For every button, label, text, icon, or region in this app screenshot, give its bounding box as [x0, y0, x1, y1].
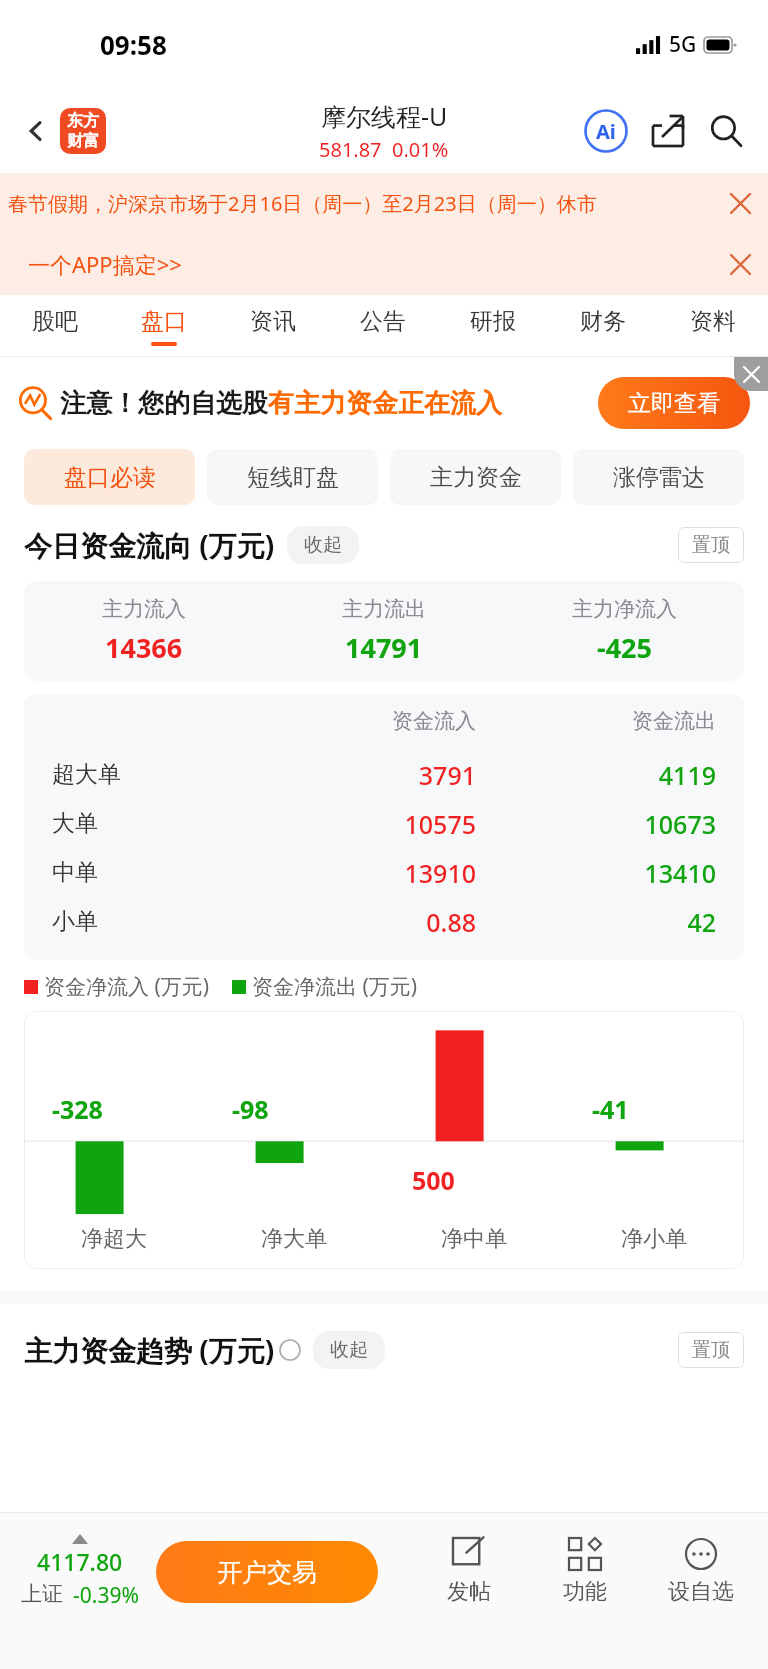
staticText: 09:58 — [100, 27, 167, 62]
staticText: 设自选 — [668, 1578, 734, 1606]
staticText: 主力资金 — [430, 463, 522, 492]
button[interactable]: Close banner — [734, 357, 768, 391]
staticText: 涨停雷达 — [613, 463, 705, 492]
staticText: 短线盯盘 — [247, 463, 339, 492]
staticText: 净大单 — [261, 1225, 327, 1253]
staticText: 注意！您的自选股 — [60, 387, 268, 420]
staticText: 股吧 — [32, 307, 78, 336]
staticText: 主力净流入 — [572, 596, 677, 622]
button[interactable]: 短线盯盘 — [207, 449, 378, 505]
staticText: 13410 — [476, 856, 716, 890]
button[interactable]: 主力资金 — [390, 449, 561, 505]
button[interactable]: 资讯 — [218, 295, 328, 357]
staticText: 收起 — [330, 1338, 368, 1362]
staticText: 今日资金流向 (万元) — [24, 526, 275, 564]
staticText: 主力流出 — [342, 596, 426, 622]
staticText: 摩尔线程-U — [321, 99, 448, 133]
staticText: 资料 — [690, 307, 736, 336]
staticText: 净小单 — [621, 1225, 687, 1253]
staticText: 超大单 — [52, 760, 236, 789]
staticText: 主力流入 — [102, 596, 186, 622]
staticText: 置顶 — [692, 533, 730, 557]
staticText: 功能 — [563, 1578, 607, 1606]
staticText: 盘口 — [141, 307, 187, 336]
staticText: 财富 — [67, 131, 99, 151]
staticText: 资讯 — [250, 307, 296, 336]
staticText: 发帖 — [447, 1578, 491, 1606]
button[interactable]: Search — [700, 105, 752, 157]
button[interactable]: 置顶 — [678, 1332, 744, 1368]
staticText: -0.39% — [73, 1581, 139, 1610]
button[interactable]: Close promo — [712, 236, 768, 292]
button[interactable]: 盘口必读 — [24, 449, 195, 505]
staticText: 10575 — [236, 807, 476, 841]
staticText: 13910 — [236, 856, 476, 890]
staticText: 500 — [412, 1163, 455, 1197]
staticText: 立即查看 — [628, 389, 720, 418]
staticText: 东方 — [67, 111, 99, 131]
staticText: 中单 — [52, 858, 236, 887]
button[interactable]: 注意！您的自选股 — [18, 357, 750, 449]
staticText: 净超大 — [81, 1225, 147, 1253]
staticText: 有主力资金正在流入 — [268, 387, 502, 420]
button[interactable]: East Money — [60, 108, 106, 154]
staticText: 14791 — [345, 629, 423, 666]
button[interactable]: 资料 — [658, 295, 768, 357]
staticText: 4117.80 — [37, 1546, 123, 1577]
staticText: -41 — [592, 1092, 629, 1126]
staticText: 盘口必读 — [64, 463, 156, 492]
staticText: Ai — [596, 118, 616, 145]
staticText: 大单 — [52, 809, 236, 838]
staticText: 研报 — [470, 307, 516, 336]
staticText: 开户交易 — [217, 1557, 317, 1588]
button[interactable]: 收起 — [287, 526, 359, 564]
staticText: 10673 — [476, 807, 716, 841]
button[interactable]: 发帖 — [426, 1538, 512, 1606]
button[interactable]: 股吧 — [0, 295, 109, 357]
staticText: 小单 — [52, 907, 236, 936]
staticText: 0.01% — [392, 136, 449, 163]
staticText: 资金净流入 (万元) — [44, 972, 210, 1001]
staticText: 置顶 — [692, 1338, 730, 1362]
staticText: -328 — [52, 1092, 103, 1126]
staticText: 一个APP搞定>> — [28, 249, 182, 279]
staticText: 资金流出 — [476, 708, 716, 734]
button[interactable]: 收起 — [313, 1331, 385, 1369]
staticText: 5G — [669, 30, 697, 59]
staticText: 公告 — [360, 307, 406, 336]
button[interactable]: 4117.80 — [10, 1534, 150, 1610]
staticText: 14366 — [105, 629, 183, 666]
staticText: 4119 — [476, 758, 716, 792]
button[interactable]: Share — [642, 105, 694, 157]
button[interactable]: 功能 — [542, 1538, 628, 1606]
button[interactable]: 财务 — [548, 295, 658, 357]
button[interactable]: 盘口 — [109, 295, 218, 357]
staticText: -425 — [597, 629, 652, 666]
staticText: 42 — [476, 905, 716, 939]
button[interactable]: 设自选 — [658, 1538, 744, 1606]
staticText: 资金流入 — [236, 708, 476, 734]
button[interactable]: AI assistant — [580, 105, 632, 157]
button[interactable]: 置顶 — [678, 527, 744, 563]
button[interactable]: Close notice — [712, 175, 768, 231]
staticText: 0.88 — [236, 905, 476, 939]
button[interactable]: 涨停雷达 — [573, 449, 744, 505]
staticText: 资金净流出 (万元) — [252, 972, 418, 1001]
button[interactable]: 立即查看 — [598, 377, 750, 429]
button[interactable]: Back — [14, 109, 58, 153]
staticText: 上证 — [21, 1581, 63, 1607]
staticText: 净中单 — [441, 1225, 507, 1253]
staticText: 春节假期，沪深京市场于2月16日（周一）至2月23日（周一）休市 — [8, 190, 597, 217]
button[interactable]: 开户交易 — [156, 1541, 378, 1603]
staticText: 主力资金趋势 (万元) — [24, 1331, 275, 1369]
staticText: 3791 — [236, 758, 476, 792]
staticText: -98 — [232, 1092, 269, 1126]
button[interactable]: 研报 — [438, 295, 548, 357]
button[interactable]: 公告 — [328, 295, 438, 357]
staticText: 财务 — [580, 307, 626, 336]
staticText: 收起 — [304, 533, 342, 557]
staticText: 581.87 — [319, 136, 382, 163]
